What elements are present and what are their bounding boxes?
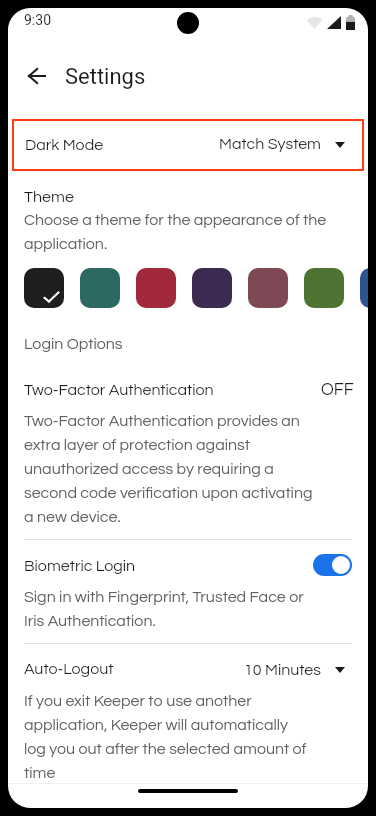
button[interactable] [80,268,120,308]
button[interactable]: Biometric Login toggle [313,554,352,576]
staticText: Two-Factor Authentication provides an ex… [24,413,313,525]
staticText: Choose a theme for the appearance of the… [24,212,327,252]
button[interactable] [192,268,232,308]
button[interactable] [360,268,368,308]
staticText: Settings [65,64,146,90]
button[interactable] [304,268,344,308]
button[interactable] [136,268,176,308]
staticText: 10 Minutes [244,662,321,678]
staticText: Sign in with Fingerprint, Trusted Face o… [24,589,304,629]
button[interactable]: Back [12,52,60,100]
staticText: 9:30 [24,12,51,28]
staticText: Theme [24,189,74,205]
staticText: Dark Mode [25,137,104,153]
staticText: Biometric Login [24,558,136,574]
button[interactable] [24,268,64,308]
staticText: Match System [219,136,322,152]
staticText: OFF [321,381,354,399]
staticText: Two-Factor Authentication [24,382,214,398]
button[interactable] [248,268,288,308]
staticText: Auto-Logout [24,661,114,677]
button[interactable]: Dark Mode [12,119,364,171]
staticText: Login Options [24,336,123,352]
staticText: If you exit Keeper to use another applic… [24,693,307,781]
